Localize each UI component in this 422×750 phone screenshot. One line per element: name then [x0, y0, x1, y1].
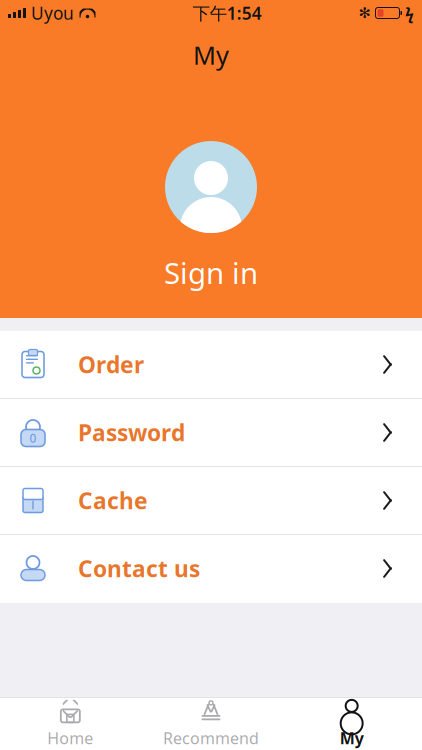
- staticText: My: [340, 727, 364, 749]
- staticText: ϟ: [405, 2, 414, 24]
- staticText: ✻: [358, 5, 370, 21]
- staticText: Home: [47, 727, 93, 749]
- staticText: 0: [29, 430, 36, 446]
- staticText: Cache: [78, 485, 148, 515]
- staticText: Recommend: [163, 727, 259, 749]
- button[interactable]: Home: [0, 698, 141, 750]
- button[interactable]: Recommend: [141, 698, 281, 750]
- staticText: Sign in: [164, 253, 258, 292]
- button[interactable]: My: [281, 698, 422, 750]
- staticText: My: [193, 38, 229, 72]
- staticText: Contact us: [78, 553, 200, 583]
- button[interactable]: Contact us: [0, 535, 422, 603]
- button[interactable]: Order: [0, 331, 422, 399]
- staticText: Order: [78, 349, 144, 379]
- staticText: Password: [78, 417, 185, 447]
- staticText: Uyou: [31, 1, 74, 24]
- staticText: 下午1:54: [193, 1, 262, 24]
- button[interactable]: Cache: [0, 467, 422, 535]
- button[interactable]: 0: [0, 399, 422, 467]
